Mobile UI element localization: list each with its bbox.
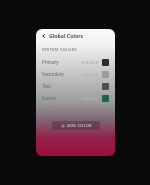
button[interactable]: Back [36,29,115,42]
staticText: SYSTEM COLORS [42,47,77,52]
staticText: Text [42,83,51,89]
button[interactable]: Primary [36,56,115,68]
staticText: Accent [42,95,57,101]
staticText: #0F5B3E [82,96,99,101]
staticText: Primary [42,59,59,65]
staticText: #2B2B2B [81,60,99,65]
button[interactable]: Accent [36,92,115,104]
staticText: Global Colors [49,32,84,39]
button[interactable]: ADD COLOR [52,121,100,130]
staticText: CUSTOM COLORS [42,110,79,115]
staticText: #9A9A9A [81,72,99,77]
button[interactable]: Text [36,80,115,92]
button[interactable]: Secondary [36,68,115,80]
staticText: ADD COLOR [67,123,92,128]
button[interactable]: Back [40,32,47,39]
staticText: Secondary [42,71,64,77]
